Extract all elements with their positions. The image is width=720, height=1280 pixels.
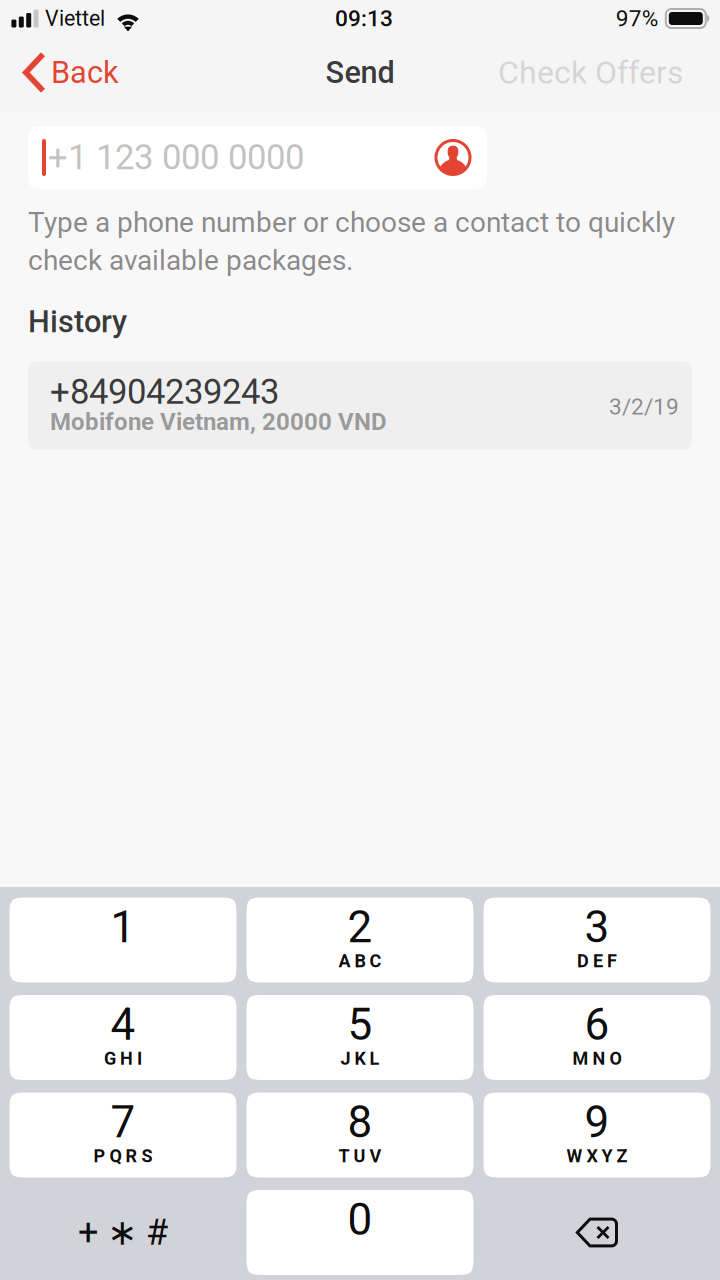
button[interactable]: Check Offers — [484, 42, 720, 102]
staticText: M N O — [572, 1048, 621, 1069]
staticText: T U V — [338, 1145, 381, 1167]
button[interactable]: 2 — [246, 897, 473, 982]
staticText: 1 — [110, 901, 135, 953]
staticText: 4 — [110, 999, 135, 1051]
staticText: 6 — [584, 999, 609, 1051]
button[interactable]: 7 — [9, 1092, 236, 1177]
staticText: Viettel — [45, 6, 105, 31]
staticText: 7 — [110, 1096, 135, 1148]
button[interactable]: Plus, star, pound — [9, 1190, 236, 1275]
staticText: 8 — [347, 1096, 372, 1148]
staticText: + ∗ # — [78, 1211, 168, 1254]
button[interactable]: 0 — [246, 1190, 473, 1275]
staticText: 2 — [347, 901, 372, 953]
staticText: A B C — [338, 950, 381, 972]
staticText: 09:13 — [335, 5, 393, 32]
button[interactable]: 9 — [483, 1092, 710, 1177]
staticText: G H I — [104, 1048, 142, 1069]
button[interactable]: Choose a contact — [430, 126, 476, 189]
staticText: Mobifone Vietnam, 20000 VND — [50, 408, 387, 436]
staticText: D E F — [577, 950, 617, 972]
staticText: Check Offers — [498, 54, 684, 91]
staticText: 5 — [347, 999, 372, 1051]
button[interactable]: Delete — [483, 1190, 710, 1275]
staticText: Type a phone number or choose a contact … — [28, 206, 675, 277]
staticText: W X Y Z — [566, 1145, 627, 1167]
staticText: J K L — [340, 1048, 379, 1069]
button[interactable]: 4 — [9, 995, 236, 1080]
button[interactable]: 1 — [9, 897, 236, 982]
staticText: Back — [51, 54, 119, 90]
button[interactable]: 5 — [246, 995, 473, 1080]
staticText: 3 — [584, 901, 609, 953]
staticText: 0 — [347, 1194, 372, 1246]
staticText: P Q R S — [93, 1145, 152, 1167]
staticText: 3/2/19 — [609, 393, 679, 420]
button[interactable]: 3 — [483, 897, 710, 982]
staticText: History — [28, 304, 127, 340]
staticText: Send — [325, 54, 394, 90]
button[interactable]: Back — [0, 42, 133, 102]
staticText: +1 123 000 0000 — [48, 137, 304, 178]
staticText: 97% — [616, 5, 659, 32]
button[interactable]: 6 — [483, 995, 710, 1080]
button[interactable]: +84904239243 — [28, 362, 692, 450]
staticText: +84904239243 — [50, 372, 279, 412]
button[interactable]: 8 — [246, 1092, 473, 1177]
staticText: 9 — [584, 1096, 609, 1148]
